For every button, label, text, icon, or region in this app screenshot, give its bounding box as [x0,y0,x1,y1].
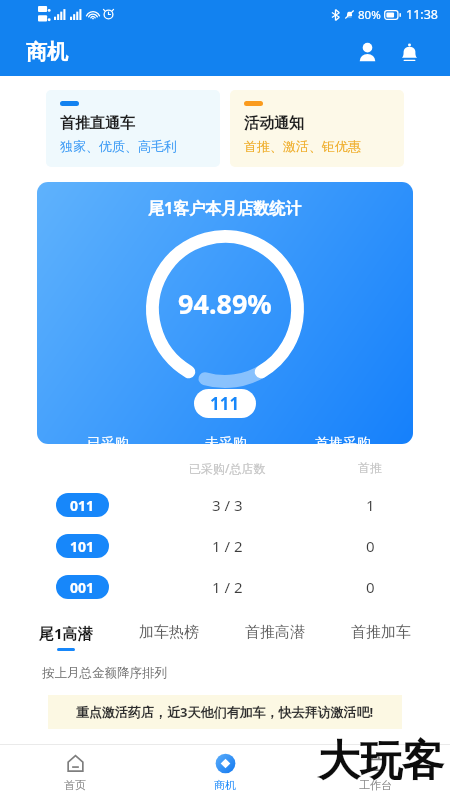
staticText: 首推高潜 [245,623,305,642]
staticText: 尾1客户本月店数统计 [148,197,302,219]
button[interactable]: 活动通知 [230,90,404,167]
button[interactable]: 首推高潜 [242,621,308,652]
staticText: 重点激活药店，近3天他们有加车，快去拜访激活吧! [76,703,374,721]
staticText: 首推、激活、钜优惠 [244,138,361,154]
staticText: 001 [70,578,95,597]
button[interactable]: 重点激活药店，近3天他们有加车，快去拜访激活吧! [48,695,402,729]
staticText: 1 / 2 [212,536,243,556]
staticText: 1 [366,495,375,515]
button[interactable]: 尾1客户本月店数统计 [37,182,413,444]
button[interactable]: 首页 [0,745,150,800]
staticText: 尾1高潜 [39,623,93,643]
button[interactable]: 加车热榜 [136,621,202,652]
staticText: 101 [70,537,95,556]
staticText: 首推 [358,460,382,475]
staticText: 首推直通车 [60,114,135,133]
button[interactable]: 首推直通车 [46,90,220,167]
staticText: 11:38 [406,6,438,23]
staticText: 0 [366,536,375,556]
staticText: 首推采购 [315,435,371,444]
staticText: 首页 [64,778,86,792]
staticText: 商机 [26,39,68,65]
staticText: 首推加车 [351,623,411,642]
button[interactable]: Profile [346,31,388,73]
button[interactable]: 商机 [150,745,300,800]
staticText: 工作台 [359,778,392,792]
staticText: 011 [70,496,95,515]
button[interactable]: 首推加车 [348,621,414,652]
staticText: 94.89% [178,285,272,322]
staticText: 已采购/总店数 [189,460,266,476]
staticText: 未采购 [205,435,247,444]
button[interactable]: 001 [0,566,450,607]
staticText: 按上月总金额降序排列 [42,665,167,681]
button[interactable]: 101 [0,525,450,566]
staticText: 0 [366,577,375,597]
button[interactable]: 尾1高潜 [36,621,96,653]
staticText: 80% [358,7,381,23]
staticText: 加车热榜 [139,623,199,642]
staticText: 已采购 [87,435,129,444]
button[interactable]: Notifications [388,31,430,73]
staticText: 商机 [214,778,236,792]
staticText: 3 / 3 [212,495,243,515]
button[interactable]: 工作台 [300,745,450,800]
button[interactable]: 011 [0,484,450,525]
staticText: 111 [210,392,240,415]
staticText: 大玩客 [318,735,444,788]
staticText: 独家、优质、高毛利 [60,138,177,154]
staticText: 活动通知 [244,114,304,133]
staticText: 1 / 2 [212,577,243,597]
